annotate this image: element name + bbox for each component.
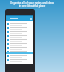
button[interactable] <box>6 42 33 46</box>
button[interactable] <box>6 30 33 34</box>
button[interactable] <box>6 34 33 38</box>
staticText: Organise all of your notes and ideas in … <box>1 1 63 7</box>
button[interactable] <box>6 22 33 26</box>
button[interactable] <box>6 26 33 30</box>
button[interactable] <box>6 50 33 54</box>
button[interactable] <box>6 38 33 42</box>
button[interactable] <box>6 46 33 50</box>
button[interactable] <box>6 54 33 58</box>
button[interactable] <box>6 58 33 62</box>
